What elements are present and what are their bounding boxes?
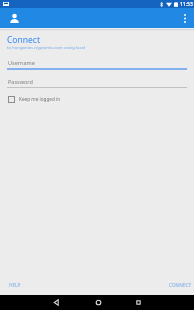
staticText: to hungarian.cryptomic.com using local (7, 45, 85, 51)
staticText: Keep me logged in (19, 96, 61, 102)
staticText: Connect (7, 34, 40, 46)
staticText: 11:53 (180, 1, 193, 8)
button[interactable]: CONNECT (164, 278, 194, 291)
staticText: Password (8, 78, 33, 85)
button[interactable]: HELP (4, 278, 26, 291)
button[interactable]: Recents (128, 295, 148, 310)
staticText: HELP (9, 282, 21, 288)
button[interactable]: Back (46, 295, 66, 310)
button[interactable]: Account (6, 8, 194, 28)
staticText: Username (8, 59, 35, 66)
staticText: CONNECT (169, 282, 192, 288)
button[interactable]: Home (88, 295, 108, 310)
button[interactable]: More options (177, 8, 193, 28)
button[interactable]: Keep me logged in (8, 93, 61, 105)
